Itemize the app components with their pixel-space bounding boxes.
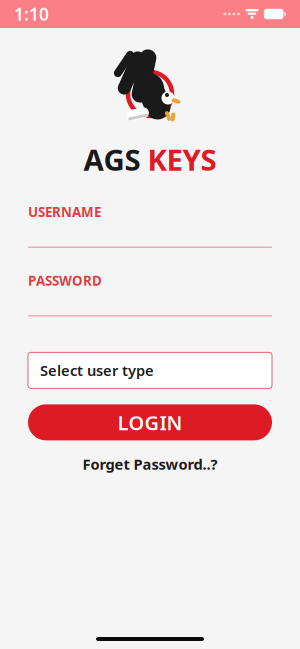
staticText: USERNAME (28, 203, 101, 221)
staticText: KEYS (147, 140, 216, 179)
button[interactable]: Select user type (28, 352, 272, 388)
staticText: Select user type (40, 361, 154, 380)
button[interactable]: Forget Password..? (28, 454, 272, 474)
button[interactable]: LOGIN (28, 404, 272, 440)
staticText: Forget Password..? (82, 454, 217, 474)
staticText: LOGIN (117, 409, 182, 436)
staticText: AGS (83, 140, 140, 179)
staticText: PASSWORD (28, 272, 102, 289)
staticText: 1:10 (14, 2, 49, 25)
